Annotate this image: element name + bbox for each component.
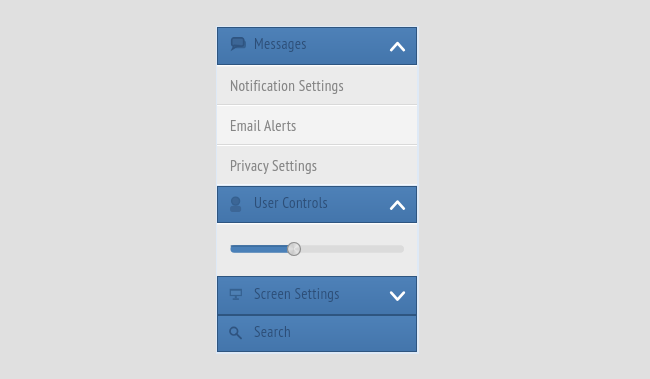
staticText: Email Alerts bbox=[230, 116, 297, 136]
button[interactable]: Messages bbox=[217, 27, 417, 65]
button[interactable]: Screen Settings bbox=[217, 276, 417, 315]
button[interactable] bbox=[217, 223, 417, 276]
staticText: Privacy Settings bbox=[230, 156, 318, 176]
staticText: Messages bbox=[254, 34, 307, 54]
button[interactable]: Search bbox=[217, 315, 417, 352]
button[interactable]: Notification Settings bbox=[217, 65, 417, 106]
button[interactable]: Privacy Settings bbox=[217, 146, 417, 186]
staticText: User Controls bbox=[254, 193, 328, 213]
staticText: Search bbox=[254, 322, 291, 342]
staticText: Screen Settings bbox=[254, 284, 340, 304]
staticText: Notification Settings bbox=[230, 76, 344, 96]
button[interactable]: User Controls bbox=[217, 186, 417, 223]
button[interactable]: Email Alerts bbox=[217, 106, 417, 146]
